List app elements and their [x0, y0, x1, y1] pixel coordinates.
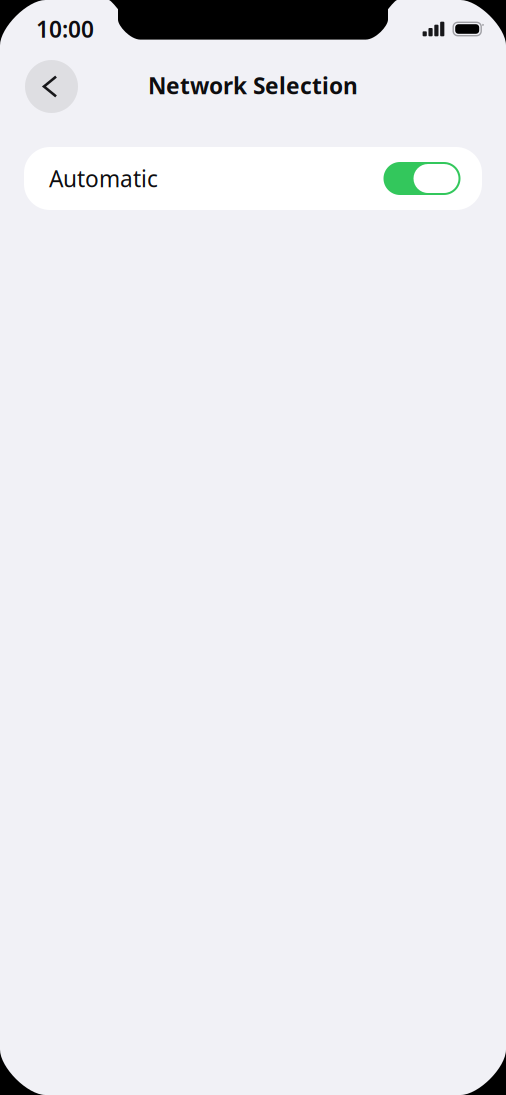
button[interactable]: Back: [25, 59, 78, 112]
staticText: Network Selection: [148, 70, 358, 100]
staticText: Automatic: [49, 163, 158, 193]
button[interactable]: Automatic: [24, 147, 482, 210]
staticText: 10:00: [36, 14, 94, 44]
